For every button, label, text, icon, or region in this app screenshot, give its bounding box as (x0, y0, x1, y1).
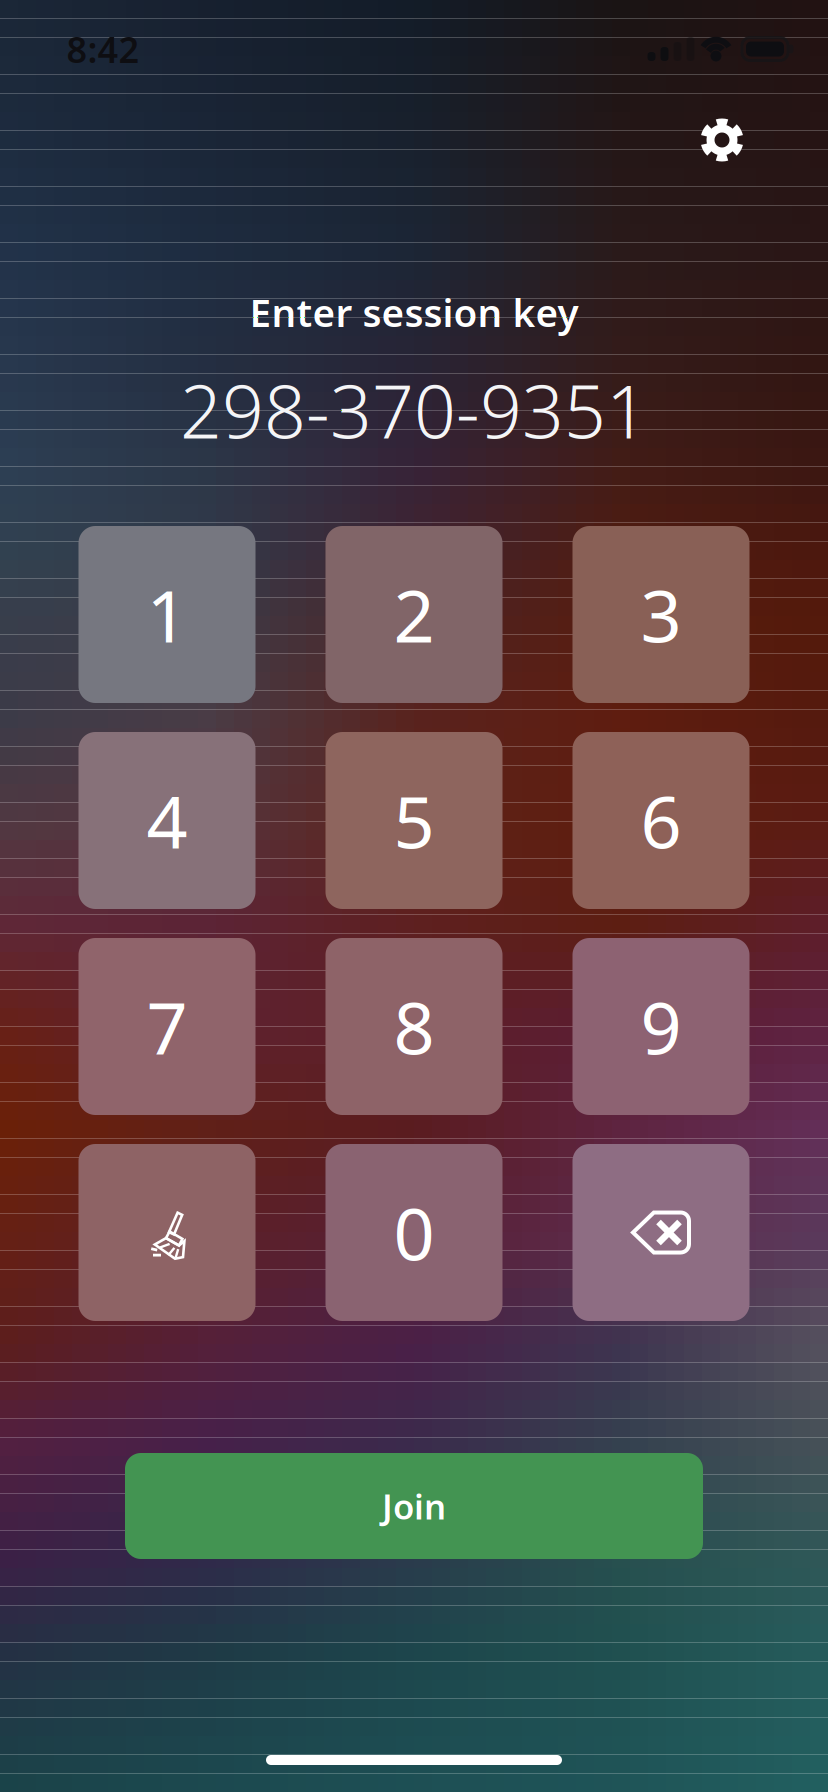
staticText: 1 (146, 567, 187, 662)
staticText: Join (382, 1483, 446, 1529)
button[interactable]: Delete (572, 1144, 749, 1321)
staticText: 298-370-9351 (180, 361, 648, 459)
button[interactable]: 1 (78, 526, 255, 703)
button[interactable]: 3 (572, 526, 749, 703)
button[interactable]: Settings (684, 102, 760, 178)
staticText: 0 (393, 1185, 434, 1280)
staticText: 8:42 (66, 25, 139, 73)
button[interactable]: Clear (78, 1144, 255, 1321)
button[interactable]: 0 (325, 1144, 502, 1321)
button[interactable]: 7 (78, 938, 255, 1115)
staticText: 7 (146, 979, 187, 1074)
staticText: 6 (640, 773, 681, 868)
staticText: 3 (640, 567, 681, 662)
staticText: 2 (393, 567, 434, 662)
staticText: 4 (146, 773, 187, 868)
staticText: 5 (393, 773, 434, 868)
button[interactable]: 5 (325, 732, 502, 909)
button[interactable]: 8 (325, 938, 502, 1115)
staticText: 9 (640, 979, 681, 1074)
button[interactable]: 6 (572, 732, 749, 909)
button[interactable]: 2 (325, 526, 502, 703)
button[interactable]: 9 (572, 938, 749, 1115)
staticText: 8 (393, 979, 434, 1074)
button[interactable]: Join (125, 1453, 703, 1559)
staticText: Enter session key (249, 286, 578, 338)
button[interactable]: 4 (78, 732, 255, 909)
